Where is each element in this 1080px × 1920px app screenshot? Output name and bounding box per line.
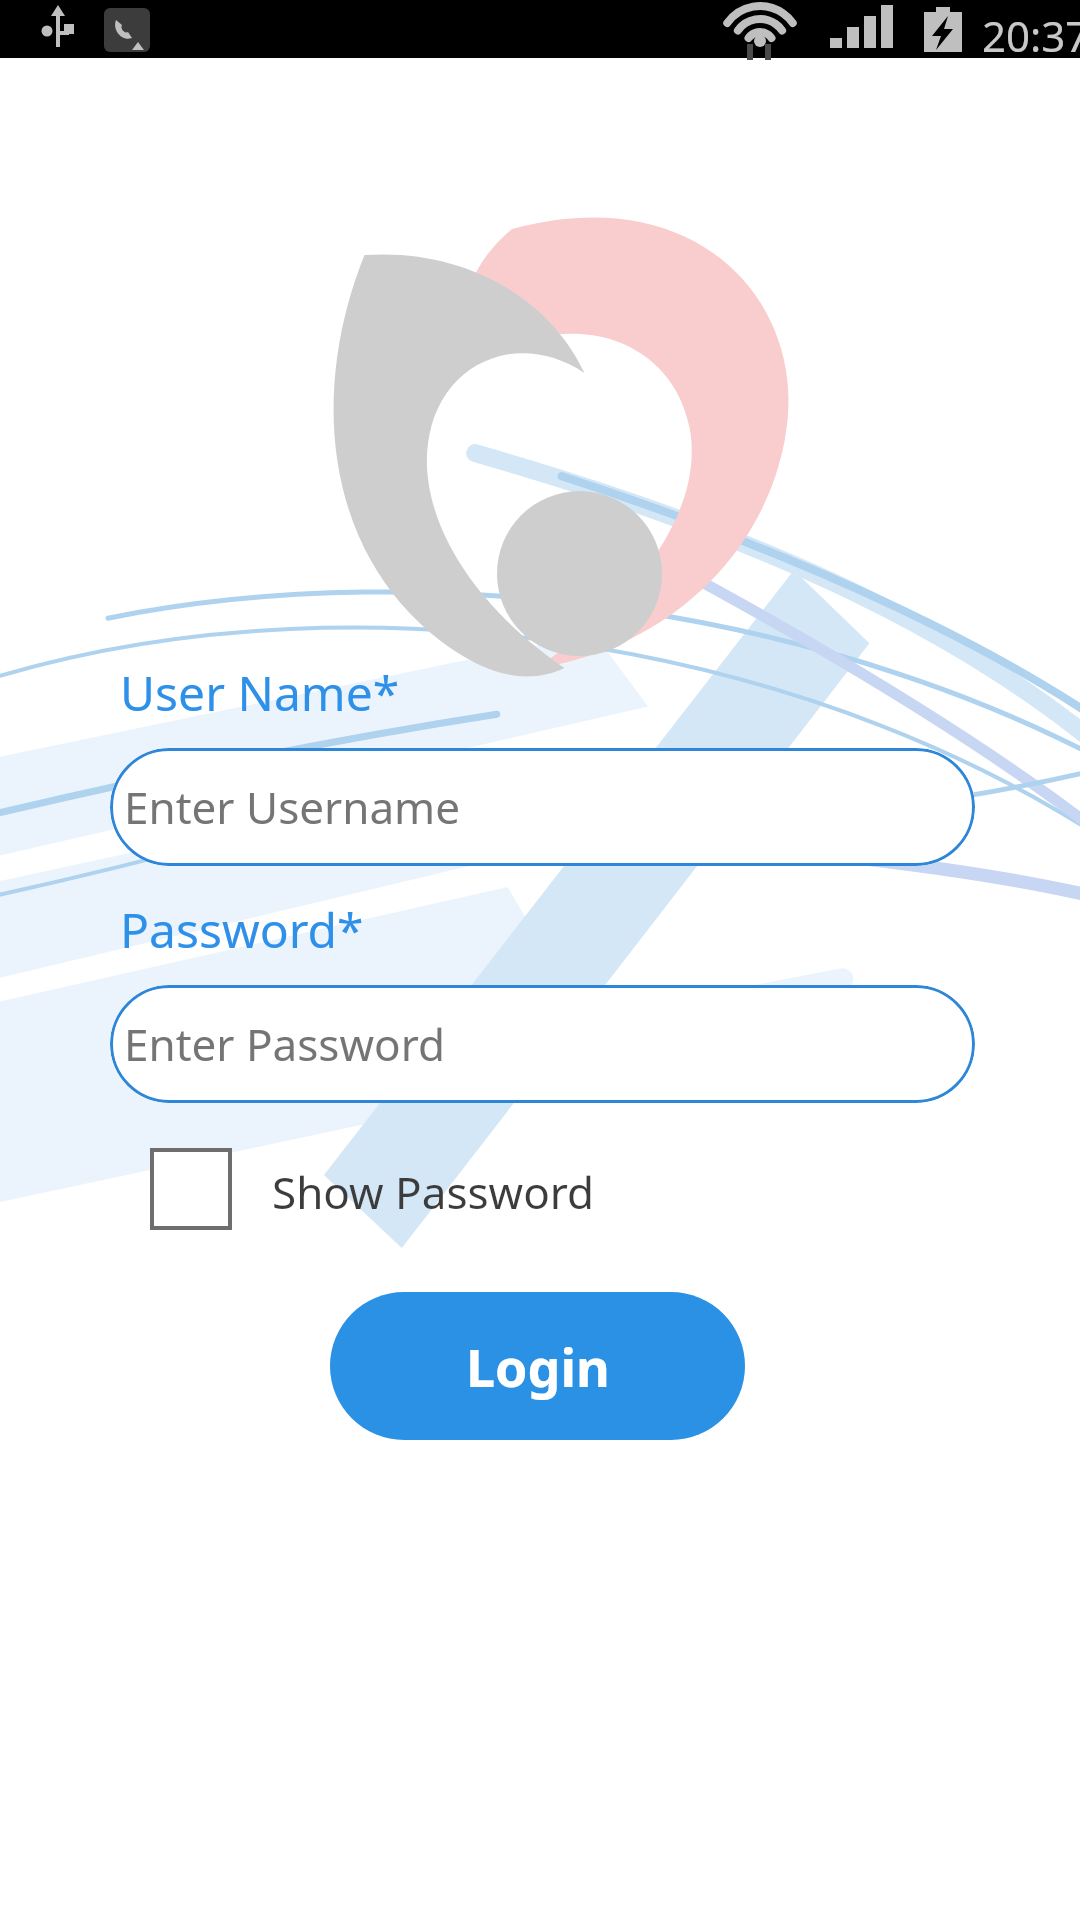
staticText: Show Password [272, 1162, 595, 1222]
button[interactable]: Enter Password [110, 985, 975, 1103]
staticText: Password* [120, 897, 364, 962]
staticText: User Name* [120, 660, 400, 725]
button[interactable]: Show Password [150, 1148, 600, 1234]
staticText: Login [466, 1331, 610, 1402]
staticText: Enter Password [124, 1014, 445, 1074]
button[interactable]: Enter Username [110, 748, 975, 866]
staticText: Enter Username [124, 777, 461, 837]
staticText: 20:37 [982, 7, 1080, 64]
button[interactable]: Login [330, 1292, 745, 1440]
